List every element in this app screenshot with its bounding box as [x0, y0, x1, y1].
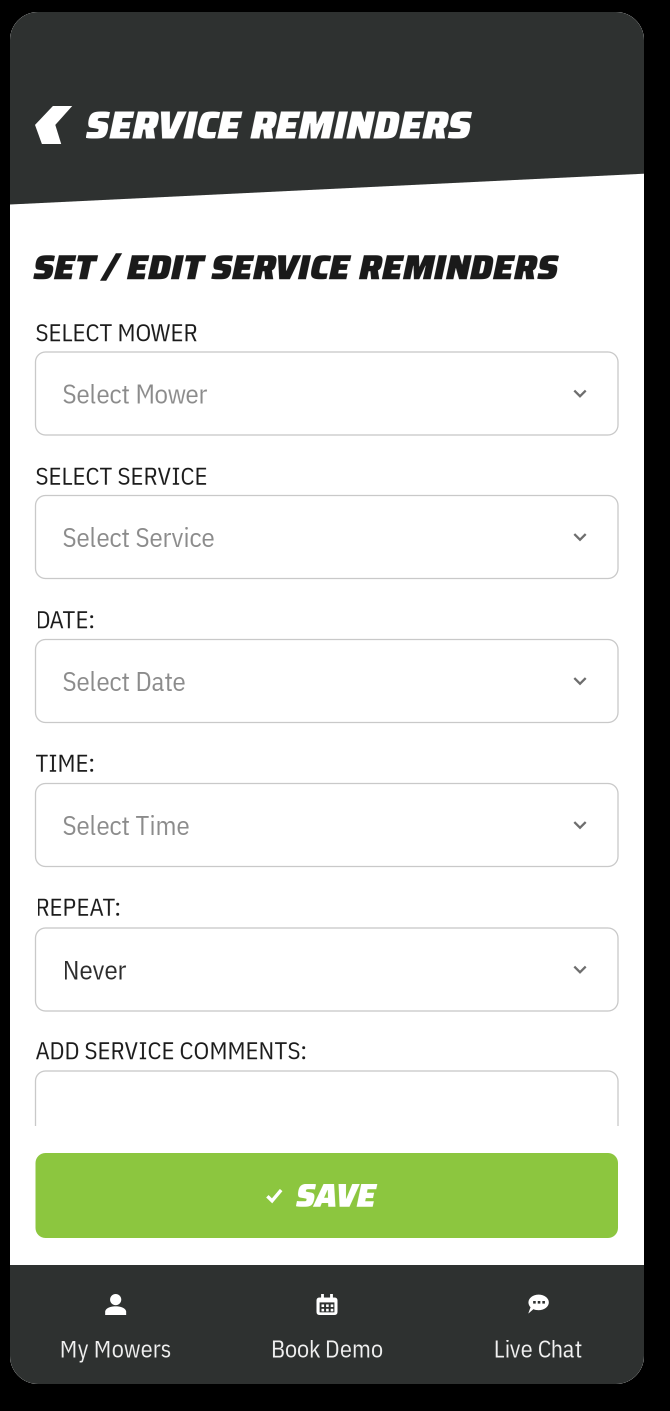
button[interactable]: Live Chat	[433, 1294, 644, 1364]
button[interactable]: Select Mower	[35, 352, 618, 435]
staticText: SAVE	[296, 1170, 376, 1221]
staticText: SELECT SERVICE	[35, 459, 207, 492]
button[interactable]: Back	[35, 106, 72, 144]
button[interactable]: My Mowers	[10, 1294, 221, 1364]
staticText: Never	[62, 952, 126, 987]
staticText: ADD SERVICE COMMENTS:	[35, 1034, 306, 1066]
staticText: My Mowers	[60, 1333, 172, 1364]
staticText: SELECT MOWER	[35, 316, 197, 348]
button[interactable]: Never	[35, 928, 618, 1011]
staticText: SET / EDIT SERVICE REMINDERS	[33, 240, 558, 295]
staticText: SERVICE REMINDERS	[85, 95, 471, 155]
button[interactable]: Book Demo	[221, 1294, 433, 1364]
staticText: Select Service	[62, 520, 214, 554]
button[interactable]: Select Time	[35, 783, 618, 866]
staticText: Select Time	[62, 808, 189, 842]
staticText: Select Date	[62, 664, 185, 698]
button[interactable]: Select Date	[35, 639, 618, 722]
staticText: DATE:	[35, 603, 94, 635]
button[interactable]: SAVE	[35, 1153, 618, 1238]
staticText: REPEAT:	[35, 890, 120, 923]
staticText: Book Demo	[271, 1333, 383, 1364]
staticText: Select Mower	[62, 376, 207, 411]
staticText: TIME:	[35, 746, 94, 779]
button[interactable]: Select Service	[35, 495, 618, 578]
staticText: Live Chat	[494, 1333, 583, 1364]
